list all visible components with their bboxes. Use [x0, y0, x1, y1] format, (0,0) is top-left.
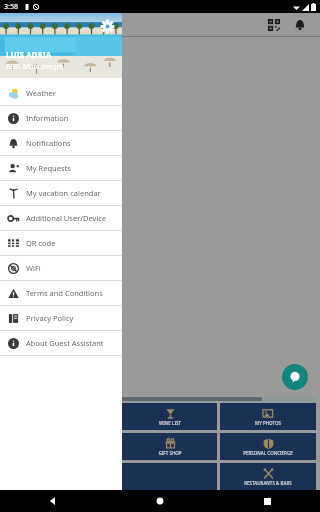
staticText: Additional User/Device Code: [26, 213, 122, 223]
staticText: QR code: [26, 238, 56, 248]
button[interactable]: My Requests: [0, 156, 122, 180]
button[interactable]: Terms and Conditions: [0, 281, 122, 305]
staticText: Privacy Policy: [26, 313, 74, 323]
staticText: 3:58: [4, 2, 18, 12]
button[interactable]: My vacation calendar: [0, 181, 122, 205]
button[interactable]: Settings: [0, 13, 122, 78]
button[interactable]: Home: [149, 490, 171, 512]
button[interactable]: Weather: [0, 81, 122, 105]
button[interactable]: Chat: [282, 364, 308, 390]
button[interactable]: WiFi: [0, 256, 122, 280]
button[interactable]: WINE LIST: [122, 403, 217, 430]
staticText: MY PHOTOS: [255, 420, 281, 426]
button[interactable]: GIFT SHOP: [122, 433, 217, 460]
button[interactable]: Settings: [98, 17, 116, 35]
button[interactable]: PERSONAL CONCIERGE: [220, 433, 316, 460]
button[interactable]: RESTAURANTS & BARS: [220, 463, 316, 490]
button[interactable]: Privacy Policy: [0, 306, 122, 330]
staticText: Information: [26, 113, 69, 123]
button[interactable]: Recents: [256, 490, 278, 512]
staticText: WINE LIST: [159, 420, 181, 426]
staticText: LUIS ADRIA: [6, 49, 52, 60]
button[interactable]: QR code: [264, 15, 284, 35]
button[interactable]: QR code: [0, 231, 122, 255]
staticText: WiFi: [26, 263, 41, 273]
staticText: GIFT SHOP: [158, 450, 182, 456]
staticText: Notifications: [26, 138, 71, 148]
button[interactable]: Notifications: [0, 131, 122, 155]
staticText: Terms and Conditions: [26, 288, 103, 298]
staticText: My Requests: [26, 163, 71, 173]
button[interactable]: Back: [42, 490, 64, 512]
button[interactable]: MY PHOTOS: [220, 403, 316, 430]
button[interactable]: Notifications: [290, 15, 310, 35]
staticText: ABIL Montenegro: [6, 62, 64, 72]
staticText: My vacation calendar: [26, 188, 101, 198]
staticText: RESTAURANTS & BARS: [244, 480, 292, 486]
button[interactable]: Additional User/Device Code: [0, 206, 122, 230]
button[interactable]: About Guest Assistant: [0, 331, 122, 355]
staticText: Weather: [26, 88, 56, 98]
button[interactable]: Information: [0, 106, 122, 130]
staticText: PERSONAL CONCIERGE: [243, 450, 293, 456]
staticText: About Guest Assistant: [26, 338, 104, 348]
